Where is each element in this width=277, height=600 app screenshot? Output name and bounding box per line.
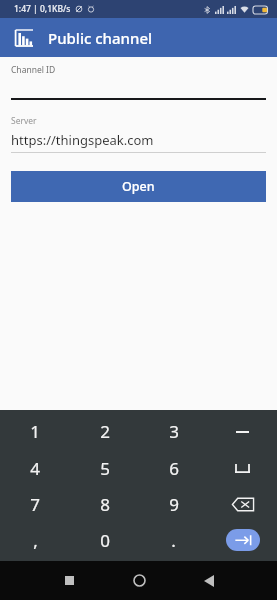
button[interactable]: Backspace bbox=[208, 486, 277, 522]
staticText: 1 bbox=[30, 420, 40, 443]
button[interactable]: 6 bbox=[139, 450, 208, 486]
button[interactable]: Back bbox=[174, 561, 244, 600]
staticText: 6 bbox=[169, 457, 179, 480]
button[interactable]: 3 bbox=[139, 413, 208, 450]
button[interactable]: Channel ID bbox=[11, 64, 266, 100]
staticText: 1:47 | 0,1KB/s bbox=[14, 3, 71, 15]
button[interactable]: 5 bbox=[70, 450, 139, 486]
staticText: 2 bbox=[100, 420, 110, 443]
button[interactable]: , bbox=[0, 522, 70, 558]
button[interactable]: 2 bbox=[70, 413, 139, 450]
button[interactable]: 7 bbox=[0, 486, 70, 522]
staticText: https://thingspeak.com bbox=[11, 131, 154, 149]
staticText: 7 bbox=[30, 493, 40, 516]
staticText: 8 bbox=[100, 493, 110, 516]
button[interactable]: Dash bbox=[208, 413, 277, 450]
staticText: 4 bbox=[30, 457, 40, 480]
button[interactable]: Open bbox=[11, 171, 266, 202]
button[interactable]: . bbox=[139, 522, 208, 558]
button[interactable]: Server bbox=[11, 115, 266, 153]
button[interactable]: 9 bbox=[139, 486, 208, 522]
button[interactable]: Recent apps bbox=[34, 561, 104, 600]
staticText: , bbox=[33, 529, 38, 552]
staticText: Channel ID bbox=[11, 64, 56, 76]
staticText: 9 bbox=[169, 493, 179, 516]
staticText: 3 bbox=[169, 420, 179, 443]
button[interactable]: 8 bbox=[70, 486, 139, 522]
staticText: 0 bbox=[100, 529, 110, 552]
button[interactable]: App icon bbox=[13, 27, 35, 49]
staticText: Public channel bbox=[48, 28, 153, 48]
button[interactable]: Enter bbox=[208, 522, 277, 558]
button[interactable]: Home bbox=[104, 561, 174, 600]
button[interactable]: Space bbox=[208, 450, 277, 486]
staticText: 5 bbox=[100, 457, 110, 480]
button[interactable]: 1 bbox=[0, 413, 70, 450]
staticText: Open bbox=[122, 178, 155, 195]
button[interactable]: 0 bbox=[70, 522, 139, 558]
button[interactable]: 4 bbox=[0, 450, 70, 486]
staticText: . bbox=[171, 529, 176, 552]
staticText: Server bbox=[11, 115, 37, 127]
